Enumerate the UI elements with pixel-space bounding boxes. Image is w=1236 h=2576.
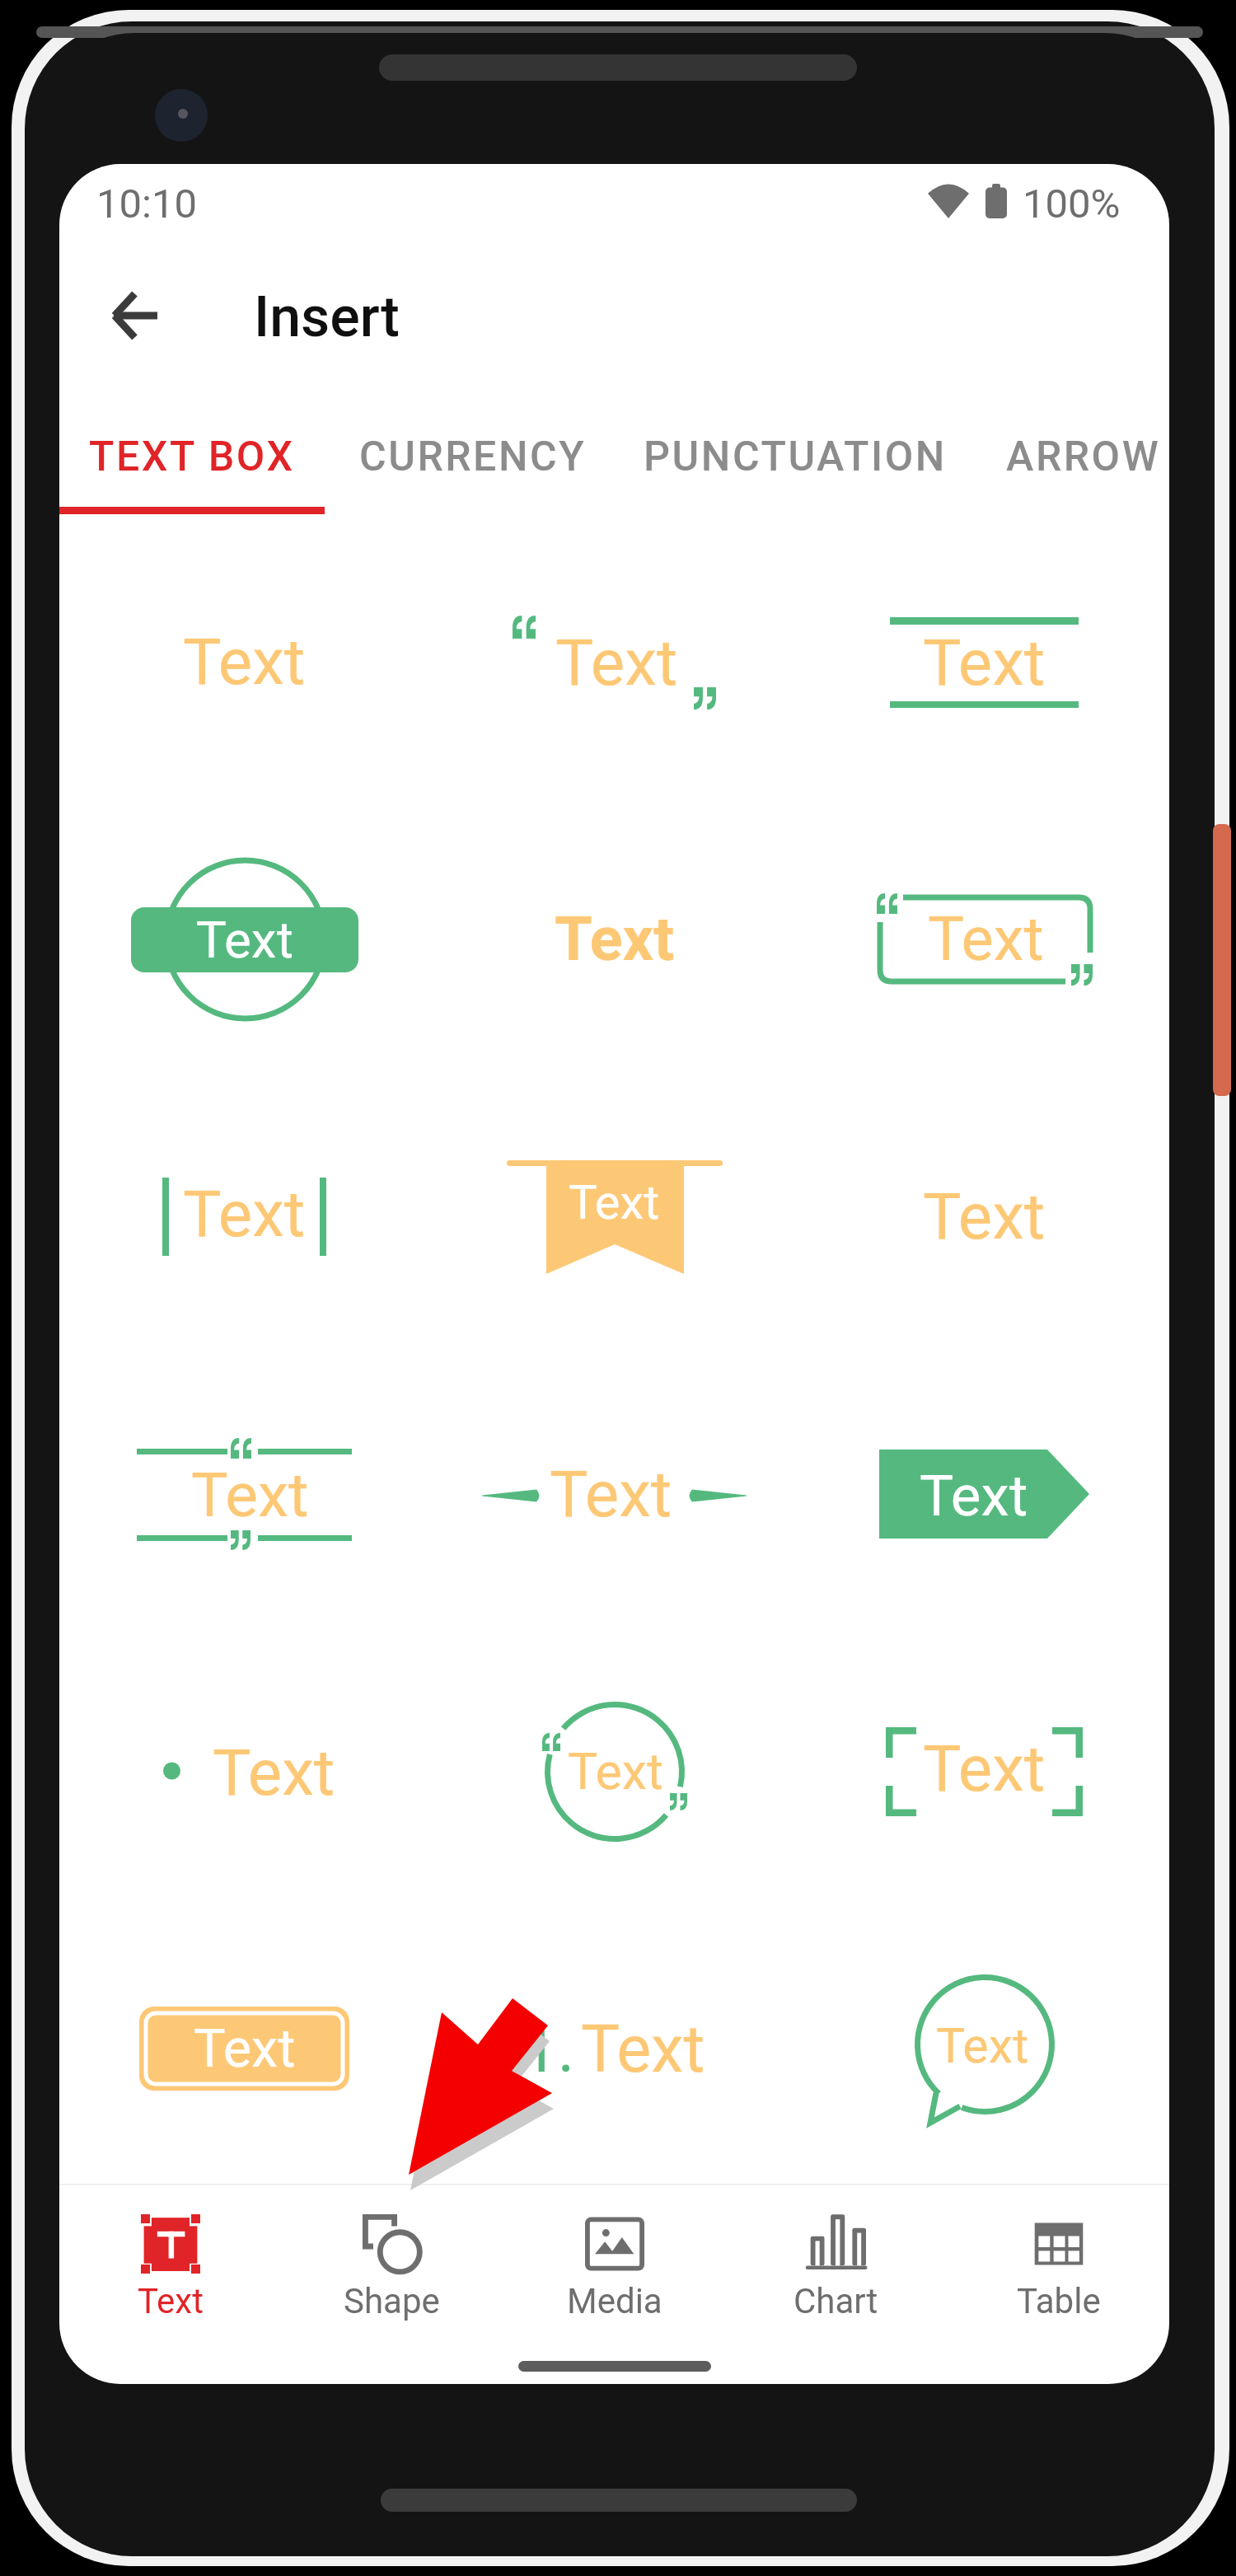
button[interactable]: Back bbox=[88, 269, 182, 363]
button[interactable]: Text bbox=[799, 1909, 1169, 2187]
staticText: 1. bbox=[522, 2012, 575, 2087]
staticText: Text bbox=[923, 1179, 1046, 1254]
button[interactable]: ARROW bbox=[970, 386, 1169, 521]
button[interactable]: Chart bbox=[725, 2185, 947, 2384]
button[interactable]: Text bbox=[799, 800, 1169, 1078]
button[interactable]: Text bbox=[429, 523, 799, 801]
button[interactable]: Text bbox=[799, 1632, 1169, 1910]
button[interactable]: Text bbox=[59, 1909, 429, 2187]
staticText: Shape bbox=[344, 2281, 440, 2321]
button[interactable]: Text bbox=[799, 1078, 1169, 1356]
button[interactable]: Text bbox=[429, 1632, 799, 1910]
staticText: Chart bbox=[794, 2281, 878, 2321]
button[interactable]: CURRENCY bbox=[325, 386, 620, 521]
button[interactable]: Text bbox=[429, 800, 799, 1078]
button[interactable]: Text bbox=[429, 1078, 799, 1356]
staticText: Text bbox=[213, 1735, 335, 1810]
staticText: TEXT BOX bbox=[89, 433, 295, 481]
button[interactable]: 1. bbox=[429, 1909, 799, 2187]
button[interactable]: Text bbox=[799, 523, 1169, 801]
button[interactable]: Media bbox=[503, 2185, 725, 2384]
staticText: Text bbox=[568, 1742, 664, 1801]
button[interactable]: Shape bbox=[281, 2185, 503, 2384]
button[interactable]: Text bbox=[429, 1355, 799, 1632]
staticText: Text bbox=[555, 625, 678, 700]
staticText: Text bbox=[550, 1457, 672, 1532]
staticText: Text bbox=[581, 2012, 705, 2088]
staticText: Insert bbox=[254, 284, 400, 350]
staticText: ARROW bbox=[1006, 433, 1161, 481]
staticText: Text bbox=[194, 2017, 296, 2080]
staticText: Text bbox=[196, 910, 293, 970]
staticText: Text bbox=[923, 625, 1046, 700]
staticText: Text bbox=[923, 1731, 1046, 1806]
button[interactable]: Table bbox=[948, 2185, 1169, 2384]
button[interactable]: TEXT BOX bbox=[59, 386, 325, 521]
staticText: PUNCTUATION bbox=[644, 433, 947, 481]
staticText: 100% bbox=[1023, 180, 1121, 227]
staticText: Text bbox=[569, 1174, 660, 1230]
staticText: Text bbox=[183, 625, 306, 700]
staticText: Text bbox=[928, 903, 1044, 975]
staticText: Text bbox=[191, 1459, 309, 1531]
staticText: Table bbox=[1017, 2281, 1101, 2321]
button[interactable]: Text bbox=[59, 1632, 429, 1910]
button[interactable]: Text bbox=[799, 1355, 1169, 1632]
staticText: Text bbox=[936, 2017, 1029, 2074]
staticText: Text bbox=[920, 1463, 1028, 1529]
button[interactable]: Text bbox=[59, 2185, 281, 2384]
button[interactable]: Text bbox=[59, 1078, 429, 1356]
staticText: Media bbox=[567, 2281, 662, 2321]
staticText: Text bbox=[555, 903, 675, 975]
button[interactable]: Text bbox=[59, 1355, 429, 1632]
staticText: 10:10 bbox=[96, 180, 198, 227]
button[interactable]: Text bbox=[59, 800, 429, 1078]
button[interactable]: PUNCTUATION bbox=[620, 386, 970, 521]
button[interactable]: Text bbox=[59, 523, 429, 801]
staticText: Text bbox=[183, 1177, 306, 1252]
staticText: CURRENCY bbox=[359, 433, 587, 481]
staticText: Text bbox=[138, 2281, 204, 2321]
